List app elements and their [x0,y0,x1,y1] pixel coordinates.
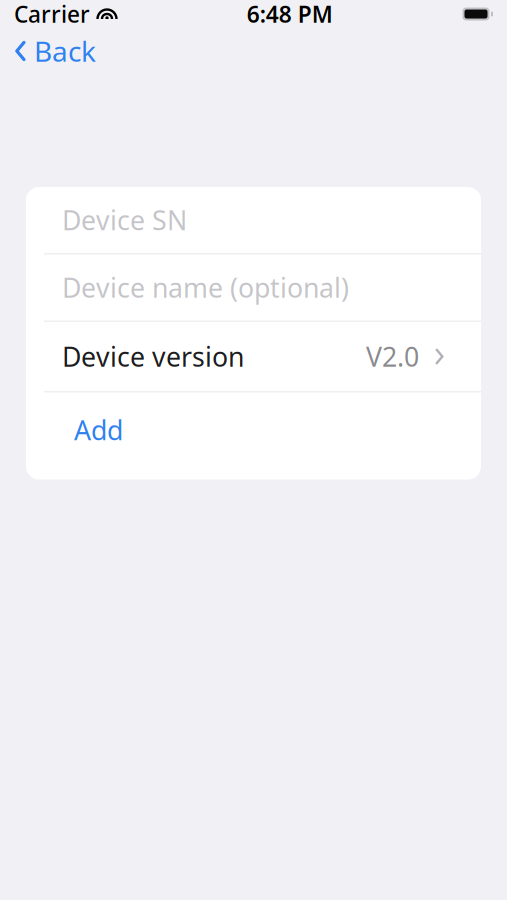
staticText: 6:48 PM [247,0,333,29]
button[interactable]: Add [26,392,481,479]
staticText: Device version [62,339,244,374]
staticText: Device name (optional) [62,270,349,305]
button[interactable]: Back [0,24,110,78]
staticText: Add [74,412,123,448]
staticText: Device SN [62,202,187,238]
staticText: V2.0 [366,339,419,374]
staticText: Back [34,32,96,70]
button[interactable]: Device version [26,322,481,391]
staticText: Carrier [14,0,90,29]
